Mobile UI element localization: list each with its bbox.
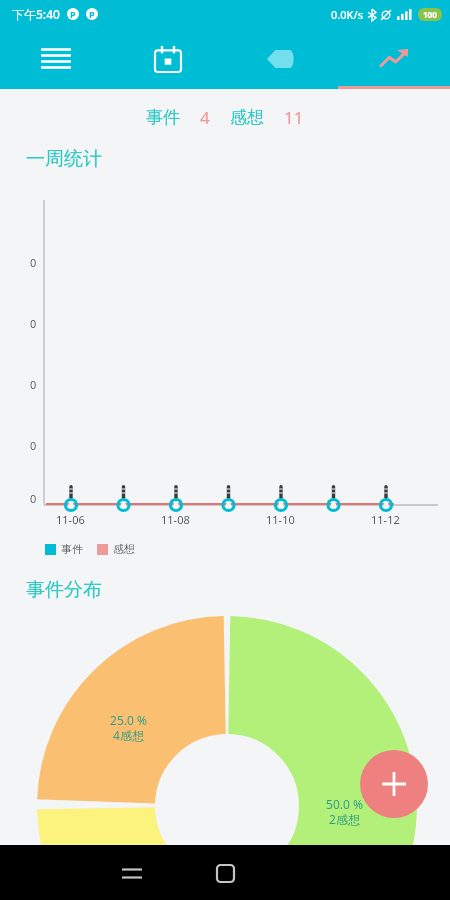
staticText: 一周统计 bbox=[26, 147, 102, 171]
staticText: 下午5:40 bbox=[12, 6, 60, 22]
staticText: 事件 bbox=[146, 107, 180, 128]
staticText: 0 bbox=[30, 491, 37, 506]
button[interactable]: Menu bbox=[0, 28, 112, 89]
button[interactable]: Recents bbox=[110, 851, 154, 895]
staticText: 事件 bbox=[61, 542, 83, 556]
staticText: 事件分布 bbox=[26, 578, 102, 602]
staticText: 感想 bbox=[113, 542, 135, 556]
staticText: 11-08 bbox=[161, 512, 190, 527]
staticText: P bbox=[89, 8, 95, 20]
button[interactable]: Tags bbox=[224, 28, 337, 89]
button[interactable]: Statistics bbox=[337, 28, 450, 89]
staticText: 0 bbox=[30, 316, 37, 331]
staticText: 0 bbox=[30, 377, 37, 392]
staticText: 4 bbox=[200, 106, 210, 129]
staticText: 11-12 bbox=[371, 512, 400, 527]
staticText: 感想 bbox=[230, 107, 264, 128]
staticText: 11 bbox=[284, 106, 304, 129]
button[interactable]: Calendar bbox=[112, 28, 224, 89]
staticText: 100 bbox=[423, 9, 437, 20]
staticText: 50.0 % 2感想 bbox=[326, 796, 363, 827]
button[interactable]: Add bbox=[360, 750, 428, 818]
staticText: 0 bbox=[30, 255, 37, 270]
staticText: 0.0K/s bbox=[331, 7, 364, 22]
staticText: 11-10 bbox=[266, 512, 295, 527]
staticText: 11-06 bbox=[56, 512, 85, 527]
button[interactable]: Home bbox=[203, 851, 247, 895]
staticText: 0 bbox=[30, 438, 37, 453]
staticText: P bbox=[70, 8, 76, 20]
staticText: 25.0 % 4感想 bbox=[110, 712, 147, 743]
